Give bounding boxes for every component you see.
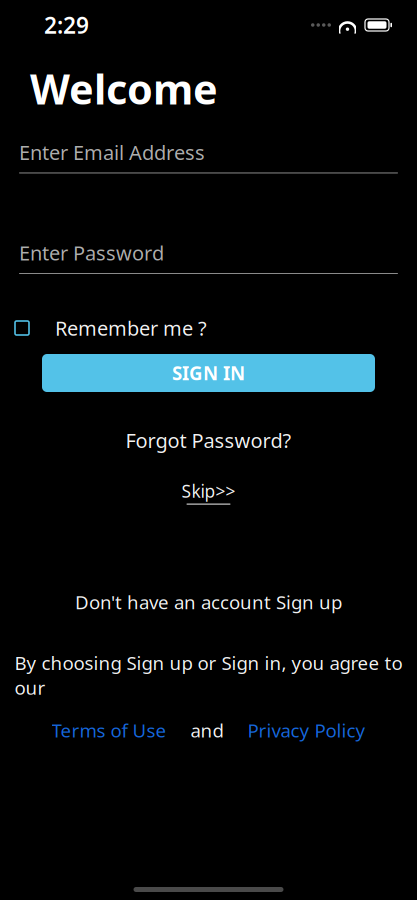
staticText: SIGN IN <box>172 361 245 385</box>
button[interactable]: Privacy Policy <box>247 714 365 747</box>
staticText: Forgot Password? <box>125 427 291 454</box>
staticText: Remember me ? <box>55 315 207 341</box>
button[interactable]: Terms of Use <box>51 714 166 747</box>
staticText: 2:29 <box>44 10 89 40</box>
staticText: Enter Email Address <box>19 139 205 165</box>
staticText: Enter Password <box>19 239 164 266</box>
staticText: Don't have an account Sign up <box>75 590 342 614</box>
button[interactable]: Skip>> <box>171 477 245 508</box>
staticText: By choosing Sign up or Sign in, you agre… <box>14 650 402 700</box>
staticText: Terms of Use <box>51 718 166 743</box>
staticText: Skip>> <box>181 480 235 503</box>
staticText: and <box>190 718 223 743</box>
button[interactable]: Forgot Password? <box>113 422 303 459</box>
staticText: Privacy Policy <box>247 718 365 743</box>
staticText: Welcome <box>30 61 218 116</box>
button[interactable]: SIGN IN <box>42 354 375 392</box>
button[interactable]: Don't have an account Sign up <box>63 585 354 619</box>
button[interactable]: Remember me ? <box>0 313 417 343</box>
